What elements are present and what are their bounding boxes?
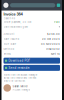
- staticText: steps for collection.: [3, 79, 25, 82]
- staticText: $248.00: [47, 32, 60, 35]
- staticText: Net 14: [51, 52, 60, 55]
- staticText: Order payment, 20 Oct: [3, 20, 31, 23]
- staticText: Sarah Miller: [12, 85, 28, 88]
- staticText: Amount: [3, 32, 14, 35]
- staticText: Account manager: [12, 88, 30, 91]
- staticText: Notes from the account manager: [3, 73, 37, 76]
- staticText: Terms: [3, 52, 10, 55]
- button[interactable]: Download PDF: [3, 58, 60, 64]
- staticText: Download PDF: [8, 59, 30, 62]
- staticText: 20 Oct 2024: [42, 37, 60, 40]
- button[interactable]: Send reminder: [3, 65, 60, 71]
- staticText: Visa 4242: [46, 47, 60, 50]
- button[interactable]: Compose: [57, 3, 60, 7]
- staticText: Case n 48: [3, 17, 15, 20]
- staticText: Date instalments gone: [3, 25, 27, 28]
- staticText: Method: [3, 47, 14, 50]
- staticText: about this invoice and the next: [3, 76, 36, 79]
- staticText: Date issued: [3, 37, 19, 40]
- staticText: Send reminder: [8, 66, 30, 70]
- staticText: 03 Nov 2024: [41, 42, 60, 45]
- staticText: Due date: [3, 42, 16, 45]
- staticText: Invoice 364: [3, 12, 22, 16]
- button[interactable]: Profile: [3, 3, 8, 8]
- staticText: Paid: [54, 20, 60, 23]
